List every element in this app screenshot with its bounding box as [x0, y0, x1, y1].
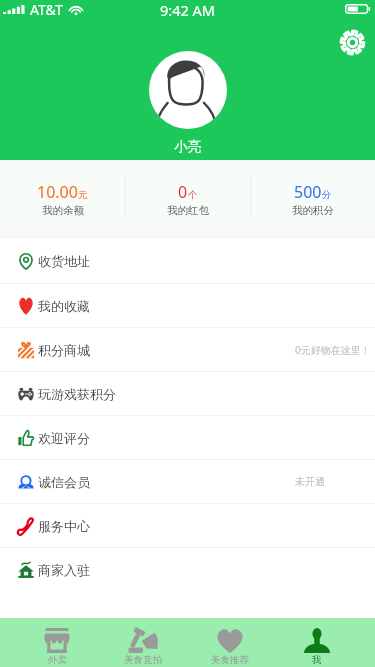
button[interactable]: 玩游戏获积分	[0, 372, 375, 415]
staticText: 收货地址	[38, 253, 90, 269]
button[interactable]: Avatar	[149, 51, 227, 129]
button[interactable]: 服务中心	[0, 504, 375, 547]
staticText: 我的红包	[167, 204, 209, 217]
staticText: 元	[78, 189, 88, 201]
staticText: 0元好物在这里！	[295, 343, 371, 357]
button[interactable]: Settings	[339, 29, 366, 56]
button[interactable]: 0	[126, 160, 250, 232]
staticText: 9:42 AM	[160, 0, 215, 18]
staticText: 欢迎评分	[38, 430, 90, 446]
button[interactable]: 我	[273, 618, 360, 667]
button[interactable]: 外卖	[14, 618, 100, 667]
staticText: 外卖	[48, 654, 67, 666]
button[interactable]: 商家入驻	[0, 548, 375, 591]
button[interactable]: 美食竞拍	[100, 618, 186, 667]
button[interactable]: 500	[251, 160, 375, 232]
staticText: 玩游戏获积分	[38, 386, 116, 402]
button[interactable]: 欢迎评分	[0, 416, 375, 459]
staticText: 0	[178, 181, 188, 203]
staticText: 服务中心	[38, 518, 90, 534]
button[interactable]: 积分商城	[0, 328, 375, 371]
staticText: 诚信会员	[38, 474, 90, 490]
button[interactable]: 美食推荐	[186, 618, 273, 667]
button[interactable]: 收货地址	[0, 239, 375, 283]
button[interactable]: 10.00	[0, 160, 125, 232]
button[interactable]: 我的收藏	[0, 284, 375, 327]
staticText: 商家入驻	[38, 562, 90, 578]
staticText: 10.00	[37, 181, 78, 203]
staticText: 未开通	[295, 475, 325, 488]
staticText: 积分商城	[38, 342, 90, 358]
staticText: 我的积分	[292, 204, 334, 217]
button[interactable]: 诚信会员	[0, 460, 375, 503]
staticText: 小亮	[174, 138, 201, 155]
staticText: 分	[322, 189, 332, 201]
staticText: 美食竞拍	[124, 654, 162, 666]
staticText: 500	[294, 181, 322, 203]
staticText: 我的余额	[42, 204, 84, 217]
staticText: 美食推荐	[211, 654, 249, 666]
staticText: AT&T	[30, 0, 63, 18]
staticText: 我的收藏	[38, 298, 90, 314]
staticText: 个	[188, 189, 198, 201]
staticText: 我	[312, 654, 322, 666]
